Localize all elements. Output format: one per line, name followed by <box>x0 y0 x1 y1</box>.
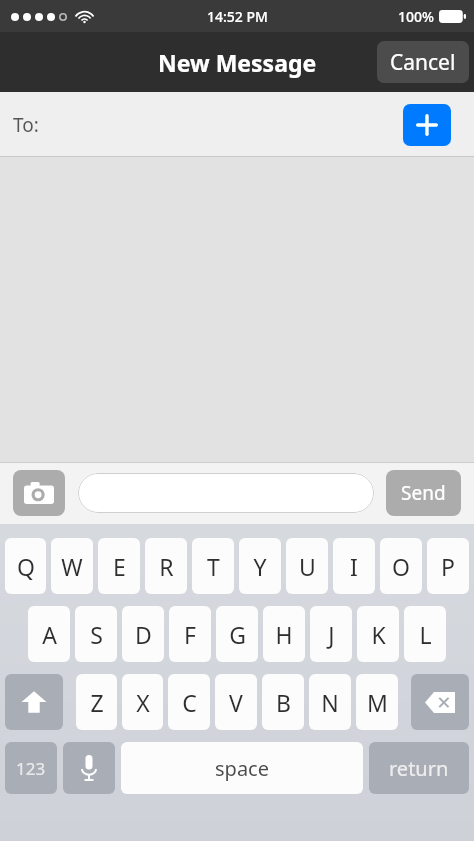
staticText: Cancel <box>390 48 456 77</box>
button[interactable]: L <box>404 606 446 662</box>
button[interactable]: B <box>262 674 304 730</box>
button[interactable]: G <box>216 606 258 662</box>
button[interactable]: Cancel <box>377 41 469 83</box>
staticText: 100% <box>398 7 434 26</box>
staticText: T <box>207 551 220 582</box>
staticText: F <box>184 619 196 650</box>
button[interactable]: C <box>168 674 210 730</box>
staticText: N <box>321 687 339 718</box>
staticText: H <box>275 619 293 650</box>
staticText: space <box>215 755 269 782</box>
staticText: X <box>136 687 150 718</box>
button[interactable]: D <box>122 606 164 662</box>
button[interactable]: N <box>309 674 351 730</box>
button[interactable]: K <box>357 606 399 662</box>
button[interactable]: Backspace <box>411 674 469 730</box>
button[interactable]: E <box>98 538 140 594</box>
button[interactable]: Add contact <box>403 104 451 146</box>
staticText: Z <box>90 687 104 718</box>
staticText: A <box>42 619 57 650</box>
button[interactable]: Send <box>386 470 461 516</box>
staticText: K <box>371 619 386 650</box>
button[interactable]: O <box>380 538 422 594</box>
button[interactable]: T <box>192 538 234 594</box>
button[interactable]: Shift <box>5 674 63 730</box>
staticText: U <box>299 551 316 582</box>
staticText: 14:52 PM <box>207 7 268 26</box>
button[interactable]: space <box>121 742 363 794</box>
button[interactable]: Z <box>76 674 117 730</box>
button[interactable]: F <box>169 606 211 662</box>
staticText: R <box>159 551 174 582</box>
staticText: L <box>419 619 432 650</box>
staticText: Y <box>253 551 267 582</box>
button[interactable]: J <box>310 606 352 662</box>
staticText: B <box>276 687 291 718</box>
button[interactable]: P <box>427 538 469 594</box>
button[interactable]: H <box>263 606 305 662</box>
staticText: 123 <box>16 757 46 780</box>
staticText: Q <box>17 551 35 582</box>
button[interactable]: I <box>333 538 375 594</box>
button[interactable]: W <box>51 538 93 594</box>
button[interactable]: Dictation <box>63 742 115 794</box>
staticText: O <box>392 551 410 582</box>
staticText: To: <box>13 112 39 138</box>
staticText: D <box>135 619 152 650</box>
button[interactable]: X <box>122 674 163 730</box>
button[interactable]: Y <box>239 538 281 594</box>
button[interactable] <box>78 473 374 513</box>
button[interactable]: R <box>145 538 187 594</box>
staticText: return <box>389 755 449 782</box>
button[interactable]: U <box>286 538 328 594</box>
staticText: V <box>229 687 243 718</box>
staticText: Send <box>401 480 446 506</box>
button[interactable]: Camera <box>13 470 65 516</box>
button[interactable]: S <box>75 606 117 662</box>
staticText: I <box>350 551 358 582</box>
staticText: S <box>90 619 103 650</box>
staticText: J <box>328 619 335 650</box>
staticText: C <box>182 687 197 718</box>
button[interactable]: V <box>215 674 257 730</box>
staticText: W <box>61 551 83 582</box>
button[interactable]: return <box>369 742 469 794</box>
button[interactable]: M <box>356 674 398 730</box>
button[interactable]: 123 <box>5 742 57 794</box>
staticText: M <box>367 687 388 718</box>
staticText: New Message <box>158 47 317 78</box>
staticText: E <box>113 551 126 582</box>
staticText: P <box>441 551 455 582</box>
button[interactable]: To: <box>0 92 474 157</box>
button[interactable]: Q <box>5 538 46 594</box>
button[interactable]: A <box>28 606 70 662</box>
staticText: G <box>229 619 246 650</box>
